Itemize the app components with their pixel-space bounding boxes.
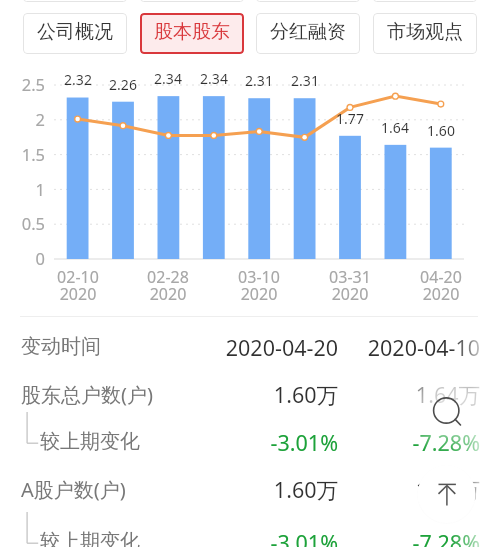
staticText: 市场观点 — [387, 20, 463, 44]
staticText: 1.77 — [320, 109, 380, 128]
staticText: 2020 — [43, 283, 113, 305]
staticText: 变动时间 — [21, 334, 101, 359]
staticText: 2020-04-20 — [158, 333, 338, 362]
button[interactable]: 公司概况 — [23, 13, 127, 54]
staticText: 0 — [0, 247, 45, 269]
staticText: 2020 — [315, 283, 385, 305]
staticText: 较上期变化 — [40, 529, 140, 547]
staticText: 0.5 — [0, 212, 45, 234]
staticText: 2.32 — [48, 70, 108, 89]
staticText: 03-31 — [315, 266, 385, 288]
staticText: 1.60万 — [158, 475, 338, 504]
staticText: 2.26 — [93, 75, 153, 94]
staticText: 2.34 — [184, 69, 244, 88]
staticText: 股本股东 — [154, 20, 230, 44]
staticText: 较上期变化 — [40, 429, 140, 454]
staticText: 1.64 — [365, 118, 425, 137]
staticText: 2020-04-10 — [300, 333, 480, 362]
staticText: -7.28% — [300, 528, 480, 547]
staticText: 04-20 — [406, 266, 476, 288]
staticText: 1.5 — [0, 143, 45, 165]
staticText: 分红融资 — [270, 20, 346, 44]
staticText: 公司概况 — [37, 20, 113, 44]
button[interactable]: Back to top — [417, 465, 476, 524]
staticText: 1.60 — [411, 121, 471, 140]
staticText: 2.31 — [275, 71, 335, 90]
staticText: 02-28 — [133, 266, 203, 288]
staticText: 1.64万 — [300, 380, 480, 409]
staticText: 2.5 — [0, 73, 45, 95]
button[interactable]: 市场观点 — [373, 13, 477, 54]
staticText: 2.34 — [138, 69, 198, 88]
button[interactable]: 分红融资 — [256, 13, 360, 54]
staticText: -3.01% — [158, 528, 338, 547]
staticText: -7.28% — [300, 428, 480, 457]
staticText: 1.64万 — [300, 475, 480, 504]
staticText: 2.31 — [229, 71, 289, 90]
staticText: 02-10 — [43, 266, 113, 288]
staticText: 2 — [0, 108, 45, 130]
staticText: -3.01% — [158, 428, 338, 457]
staticText: A股户数(户) — [21, 476, 126, 503]
button[interactable]: 股本股东 — [140, 13, 244, 54]
staticText: 03-10 — [224, 266, 294, 288]
staticText: 2020 — [224, 283, 294, 305]
staticText: 股东总户数(户) — [21, 381, 153, 408]
staticText: 1.60万 — [158, 380, 338, 409]
staticText: 2020 — [133, 283, 203, 305]
button[interactable]: Search — [428, 392, 468, 432]
staticText: 1 — [0, 178, 45, 200]
staticText: 2020 — [406, 283, 476, 305]
